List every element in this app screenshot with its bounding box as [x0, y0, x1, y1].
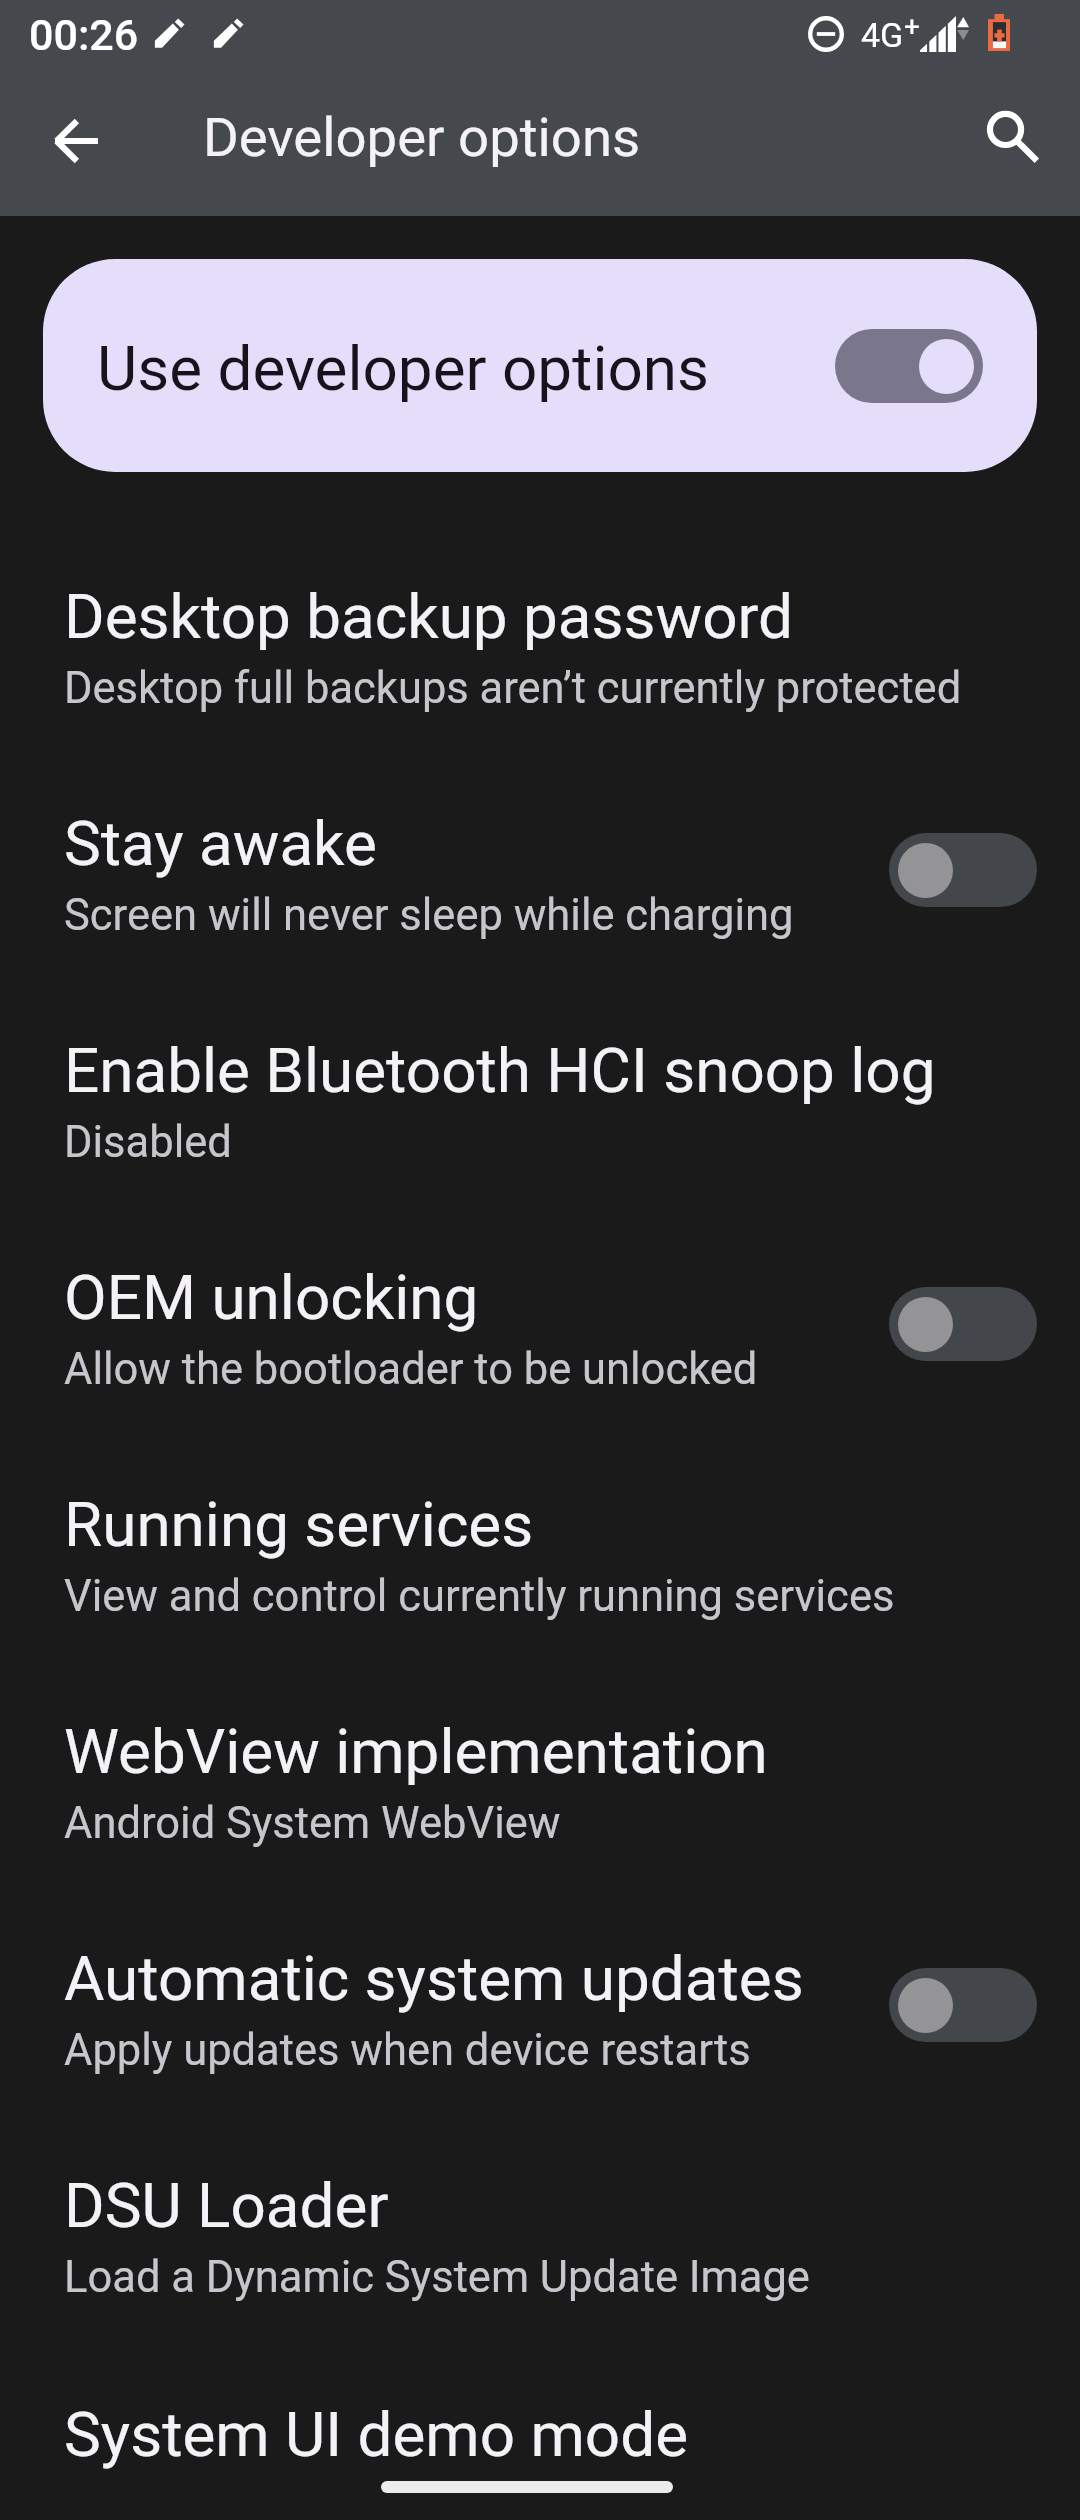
staticText: Apply updates when device restarts [64, 2025, 751, 2076]
staticText: Load a Dynamic System Update Image [64, 2252, 810, 2303]
button[interactable]: Use developer options [43, 259, 1037, 472]
staticText: View and control currently running servi… [64, 1571, 895, 1622]
staticText: Automatic system updates [64, 1942, 804, 2015]
button[interactable]: Desktop backup password [0, 533, 1080, 760]
staticText: Desktop full backups aren’t currently pr… [64, 663, 962, 714]
staticText: Enable Bluetooth HCI snoop log [64, 1034, 936, 1107]
staticText: Disabled [64, 1117, 232, 1168]
button[interactable]: Switch off [889, 833, 1037, 907]
staticText: Use developer options [97, 332, 710, 405]
staticText: OEM unlocking [64, 1261, 479, 1334]
staticText: Stay awake [64, 807, 377, 880]
button[interactable]: DSU Loader [0, 2122, 1080, 2349]
button[interactable]: Automatic system updates [0, 1895, 1080, 2122]
staticText: Allow the bootloader to be unlocked [64, 1344, 758, 1395]
button[interactable]: WebView implementation [0, 1668, 1080, 1895]
staticText: System UI demo mode [64, 2398, 689, 2471]
staticText: Developer options [203, 105, 641, 169]
staticText: Android System WebView [64, 1798, 561, 1849]
staticText: DSU Loader [64, 2169, 389, 2242]
button[interactable]: Switch off [889, 1287, 1037, 1361]
staticText: + [904, 10, 920, 43]
staticText: Running services [64, 1488, 534, 1561]
staticText: 4G [861, 15, 904, 55]
staticText: Screen will never sleep while charging [64, 890, 794, 941]
button[interactable]: Switch off [889, 1968, 1037, 2042]
button[interactable]: Enable Bluetooth HCI snoop log [0, 987, 1080, 1214]
button[interactable]: Back [28, 93, 124, 189]
button[interactable]: Running services [0, 1441, 1080, 1668]
staticText: 00:26 [29, 10, 139, 60]
staticText: Desktop backup password [64, 580, 793, 653]
button[interactable]: Stay awake [0, 760, 1080, 987]
button[interactable]: OEM unlocking [0, 1214, 1080, 1441]
button[interactable]: Switch on [835, 329, 983, 403]
staticText: WebView implementation [64, 1715, 768, 1788]
button[interactable]: Search [964, 89, 1060, 185]
button[interactable]: System UI demo mode [0, 2349, 1080, 2520]
